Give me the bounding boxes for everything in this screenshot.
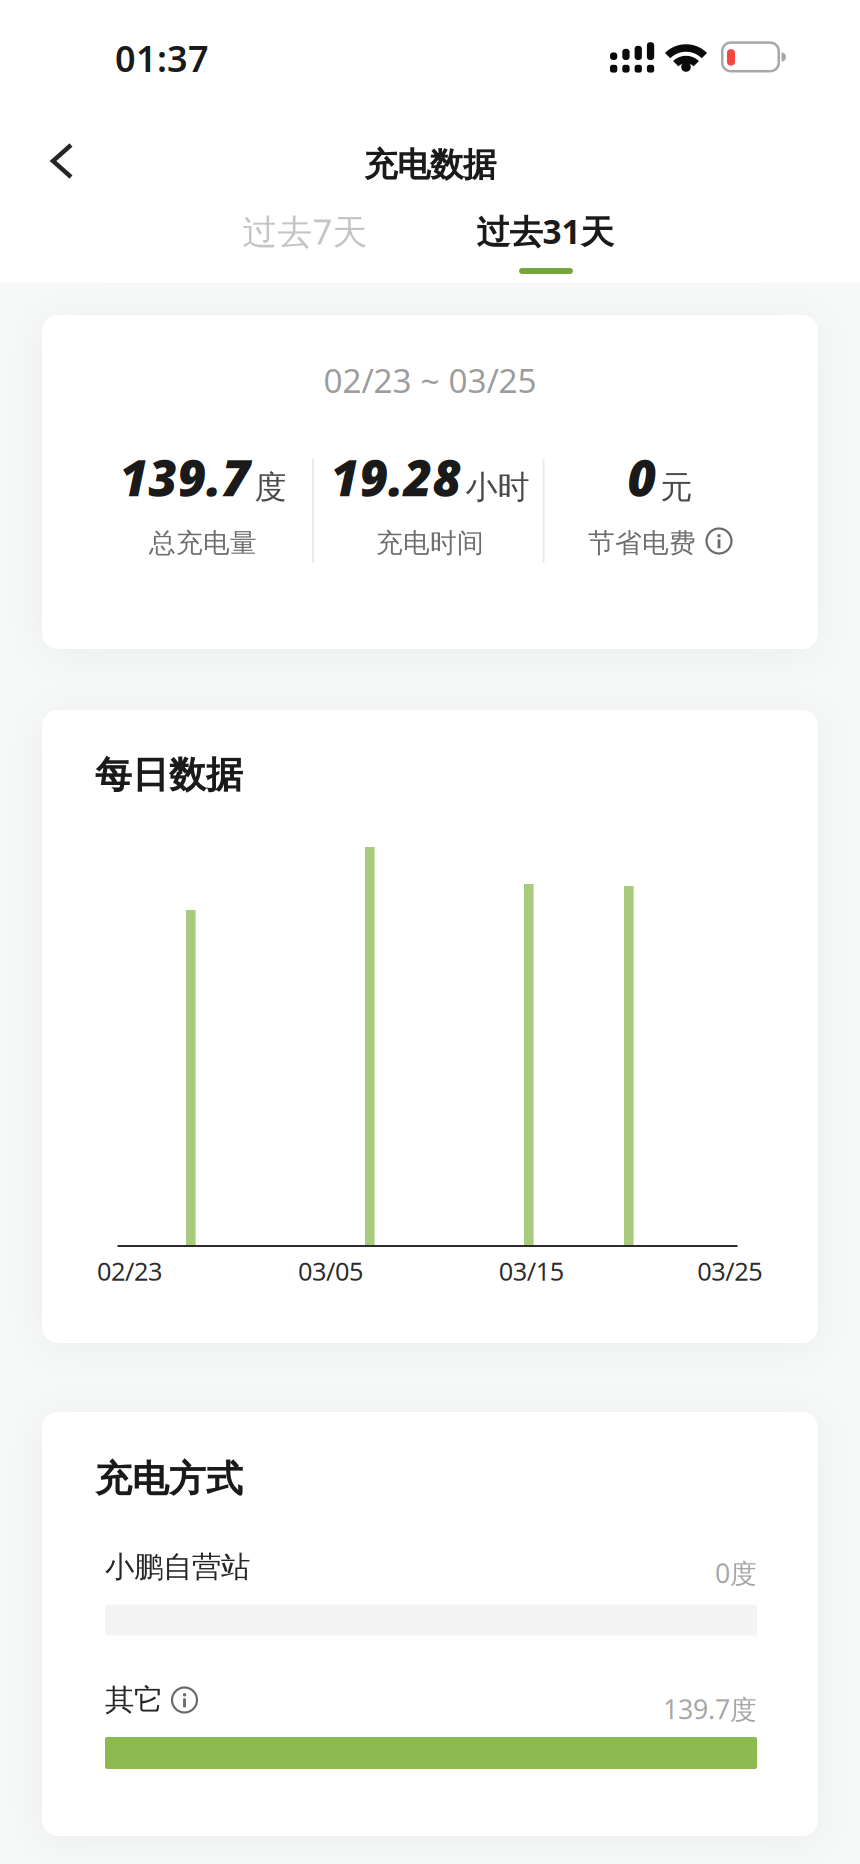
staticText: 每日数据 bbox=[95, 752, 243, 798]
staticText: 总充电量 bbox=[149, 526, 257, 560]
button[interactable]: 其它说明 bbox=[166, 1682, 202, 1718]
staticText: 0度 bbox=[715, 1555, 757, 1591]
staticText: 元 bbox=[660, 467, 692, 508]
staticText: 02/23 ~ 03/25 bbox=[323, 357, 536, 403]
staticText: 充电数据 bbox=[364, 144, 496, 186]
button[interactable]: 过去31天 bbox=[440, 195, 650, 267]
staticText: 02/23 bbox=[97, 1254, 162, 1288]
staticText: 充电方式 bbox=[95, 1456, 243, 1502]
button[interactable]: 节省电费说明 bbox=[701, 523, 737, 559]
staticText: 0 bbox=[627, 443, 656, 511]
staticText: 19.28 bbox=[330, 443, 461, 511]
button[interactable]: Back bbox=[36, 133, 92, 189]
staticText: 139.7度 bbox=[663, 1691, 757, 1727]
staticText: 小鹏自营站 bbox=[105, 1548, 250, 1585]
button[interactable]: 过去7天 bbox=[200, 195, 410, 267]
staticText: 过去31天 bbox=[476, 208, 613, 254]
staticText: 节省电费 bbox=[588, 526, 696, 560]
staticText: 过去7天 bbox=[242, 207, 367, 255]
staticText: 03/15 bbox=[499, 1254, 564, 1288]
staticText: 其它 bbox=[105, 1681, 163, 1718]
staticText: 充电时间 bbox=[376, 526, 484, 560]
staticText: 01:37 bbox=[115, 33, 209, 82]
staticText: 度 bbox=[254, 467, 286, 508]
staticText: 小时 bbox=[465, 467, 529, 508]
staticText: 139.7 bbox=[119, 443, 250, 511]
staticText: 03/05 bbox=[298, 1254, 363, 1288]
staticText: 03/25 bbox=[697, 1254, 762, 1288]
